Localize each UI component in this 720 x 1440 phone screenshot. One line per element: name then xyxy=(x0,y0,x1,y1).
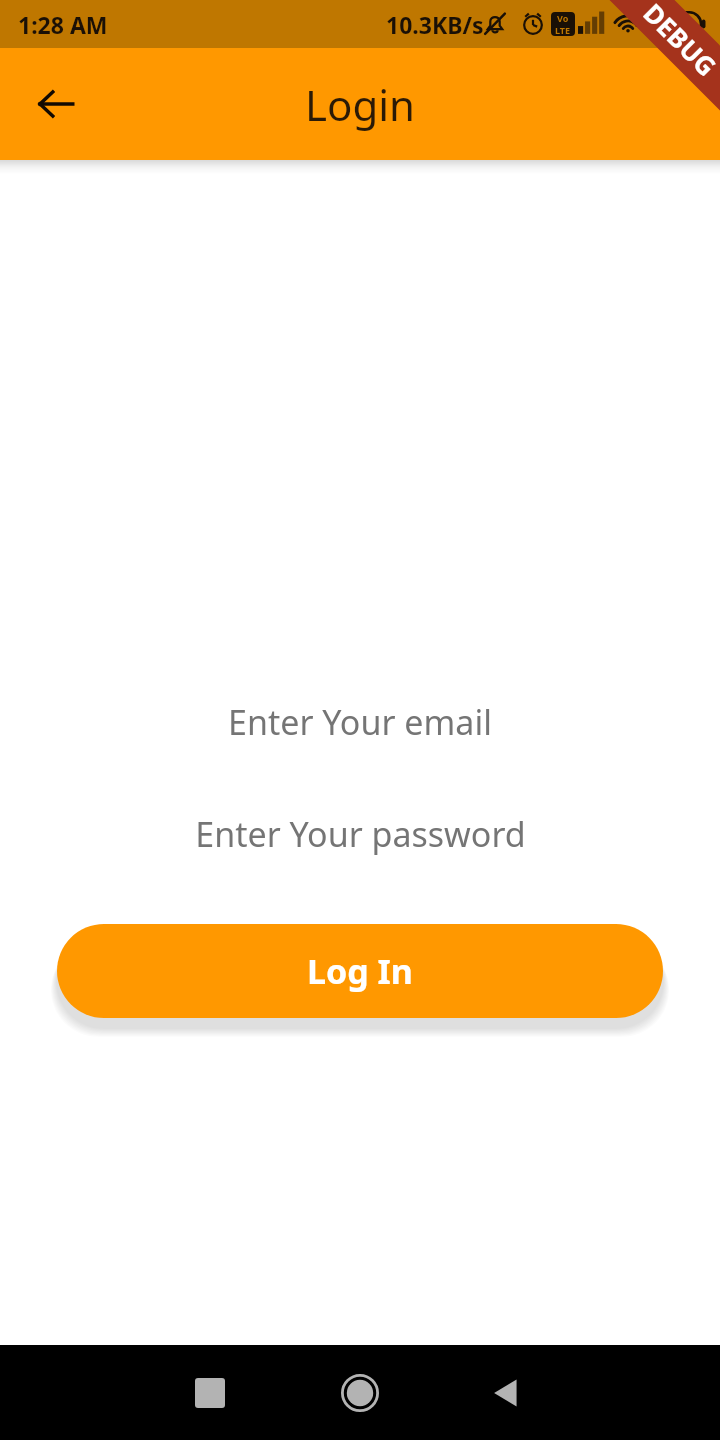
staticText: DEBUG xyxy=(636,0,720,83)
button[interactable]: Back xyxy=(469,1357,541,1429)
button[interactable]: Enter Your email xyxy=(0,694,720,750)
staticText: 1:28 AM xyxy=(18,9,108,40)
staticText: 47 xyxy=(667,13,687,36)
staticText: Enter Your email xyxy=(228,699,492,745)
staticText: Vo xyxy=(557,12,569,24)
button[interactable]: Back xyxy=(20,68,92,140)
button[interactable]: Log In xyxy=(57,924,663,1018)
button[interactable]: Home xyxy=(324,1357,396,1429)
staticText: Enter Your password xyxy=(195,811,526,857)
button[interactable]: Enter Your password xyxy=(0,806,720,862)
button[interactable]: Recent apps xyxy=(174,1357,246,1429)
staticText: 10.3KB/s xyxy=(386,9,484,40)
staticText: Log In xyxy=(307,948,413,994)
staticText: Login xyxy=(305,76,416,133)
staticText: LTE xyxy=(555,24,571,36)
